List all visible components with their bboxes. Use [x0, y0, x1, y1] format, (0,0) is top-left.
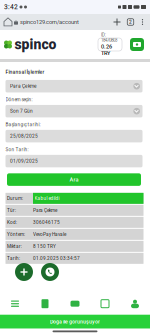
button[interactable]: Doğa ile görünüşüyor: [0, 315, 150, 329]
staticText: Para Çekme: [33, 208, 57, 213]
staticText: VevoPay Havale: [33, 232, 66, 237]
staticText: 2: [129, 19, 132, 25]
button[interactable]: Menu: [0, 293, 30, 315]
staticText: Başlangıç tarihi:: [5, 122, 40, 127]
button[interactable]: ID: 18470803: [98, 38, 122, 51]
staticText: 0.26 TRY: [101, 43, 112, 56]
staticText: 306046175: [33, 220, 60, 225]
button[interactable]: Add: [15, 263, 33, 281]
staticText: Kod:: [7, 220, 17, 225]
button[interactable]: Tabs: [124, 14, 137, 30]
staticText: Para Çekme: [10, 83, 37, 89]
staticText: spinco: [14, 36, 56, 53]
button[interactable]: WhatsApp support: [41, 263, 59, 281]
button[interactable]: 01/09/2025: [5, 155, 142, 167]
staticText: Tür:: [7, 208, 16, 213]
staticText: 8 150 TRY: [33, 244, 56, 249]
staticText: Kabul edildi: [34, 196, 59, 201]
staticText: Finansal İşlemler: [5, 69, 44, 75]
staticText: spinco129.com/account: [20, 19, 79, 25]
staticText: Son 7 Gün: [10, 108, 33, 114]
staticText: ID: 18470803: [101, 32, 117, 43]
staticText: 01/09/2025: [10, 158, 38, 164]
staticText: 01.09.2025 03:34:57: [33, 256, 80, 261]
staticText: Ara: [69, 176, 78, 183]
staticText: 3:42: [4, 3, 18, 11]
button[interactable]: Son 7 Gün: [5, 105, 142, 117]
staticText: 25/08/2025: [10, 133, 38, 139]
staticText: Yöntem:: [7, 232, 25, 237]
staticText: Dönem seçin:: [5, 97, 32, 102]
button[interactable]: Home: [3, 14, 13, 30]
button[interactable]: Para Çekme: [5, 80, 142, 92]
button[interactable]: Games: [90, 293, 120, 315]
button[interactable]: Casino: [60, 293, 90, 315]
staticText: Tarih:: [7, 256, 20, 261]
button[interactable]: Deposit: [130, 38, 144, 51]
button[interactable]: Ara: [7, 173, 141, 186]
staticText: Miktar:: [7, 244, 22, 249]
staticText: Durum:: [7, 196, 23, 201]
button[interactable]: Bets: [30, 293, 60, 315]
button[interactable]: 25/08/2025: [5, 130, 142, 142]
button[interactable]: New tab: [110, 14, 124, 30]
button[interactable]: Profile: [120, 293, 150, 315]
staticText: Doğa ile görünüşüyor: [50, 319, 100, 325]
staticText: Son Tarih:: [5, 147, 28, 152]
button[interactable]: Menu: [137, 14, 148, 30]
